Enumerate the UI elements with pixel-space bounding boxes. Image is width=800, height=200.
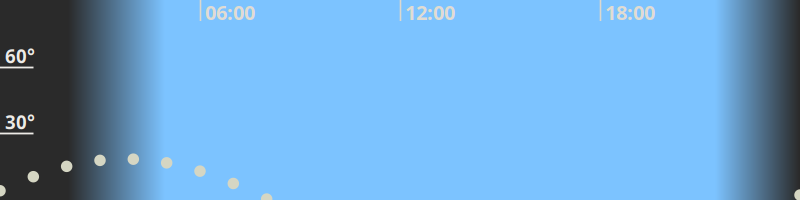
staticText: 18:00 [605,0,655,26]
staticText: 30° [5,110,35,134]
staticText: 60° [5,44,35,68]
staticText: 12:00 [405,0,455,26]
staticText: 06:00 [205,0,255,26]
